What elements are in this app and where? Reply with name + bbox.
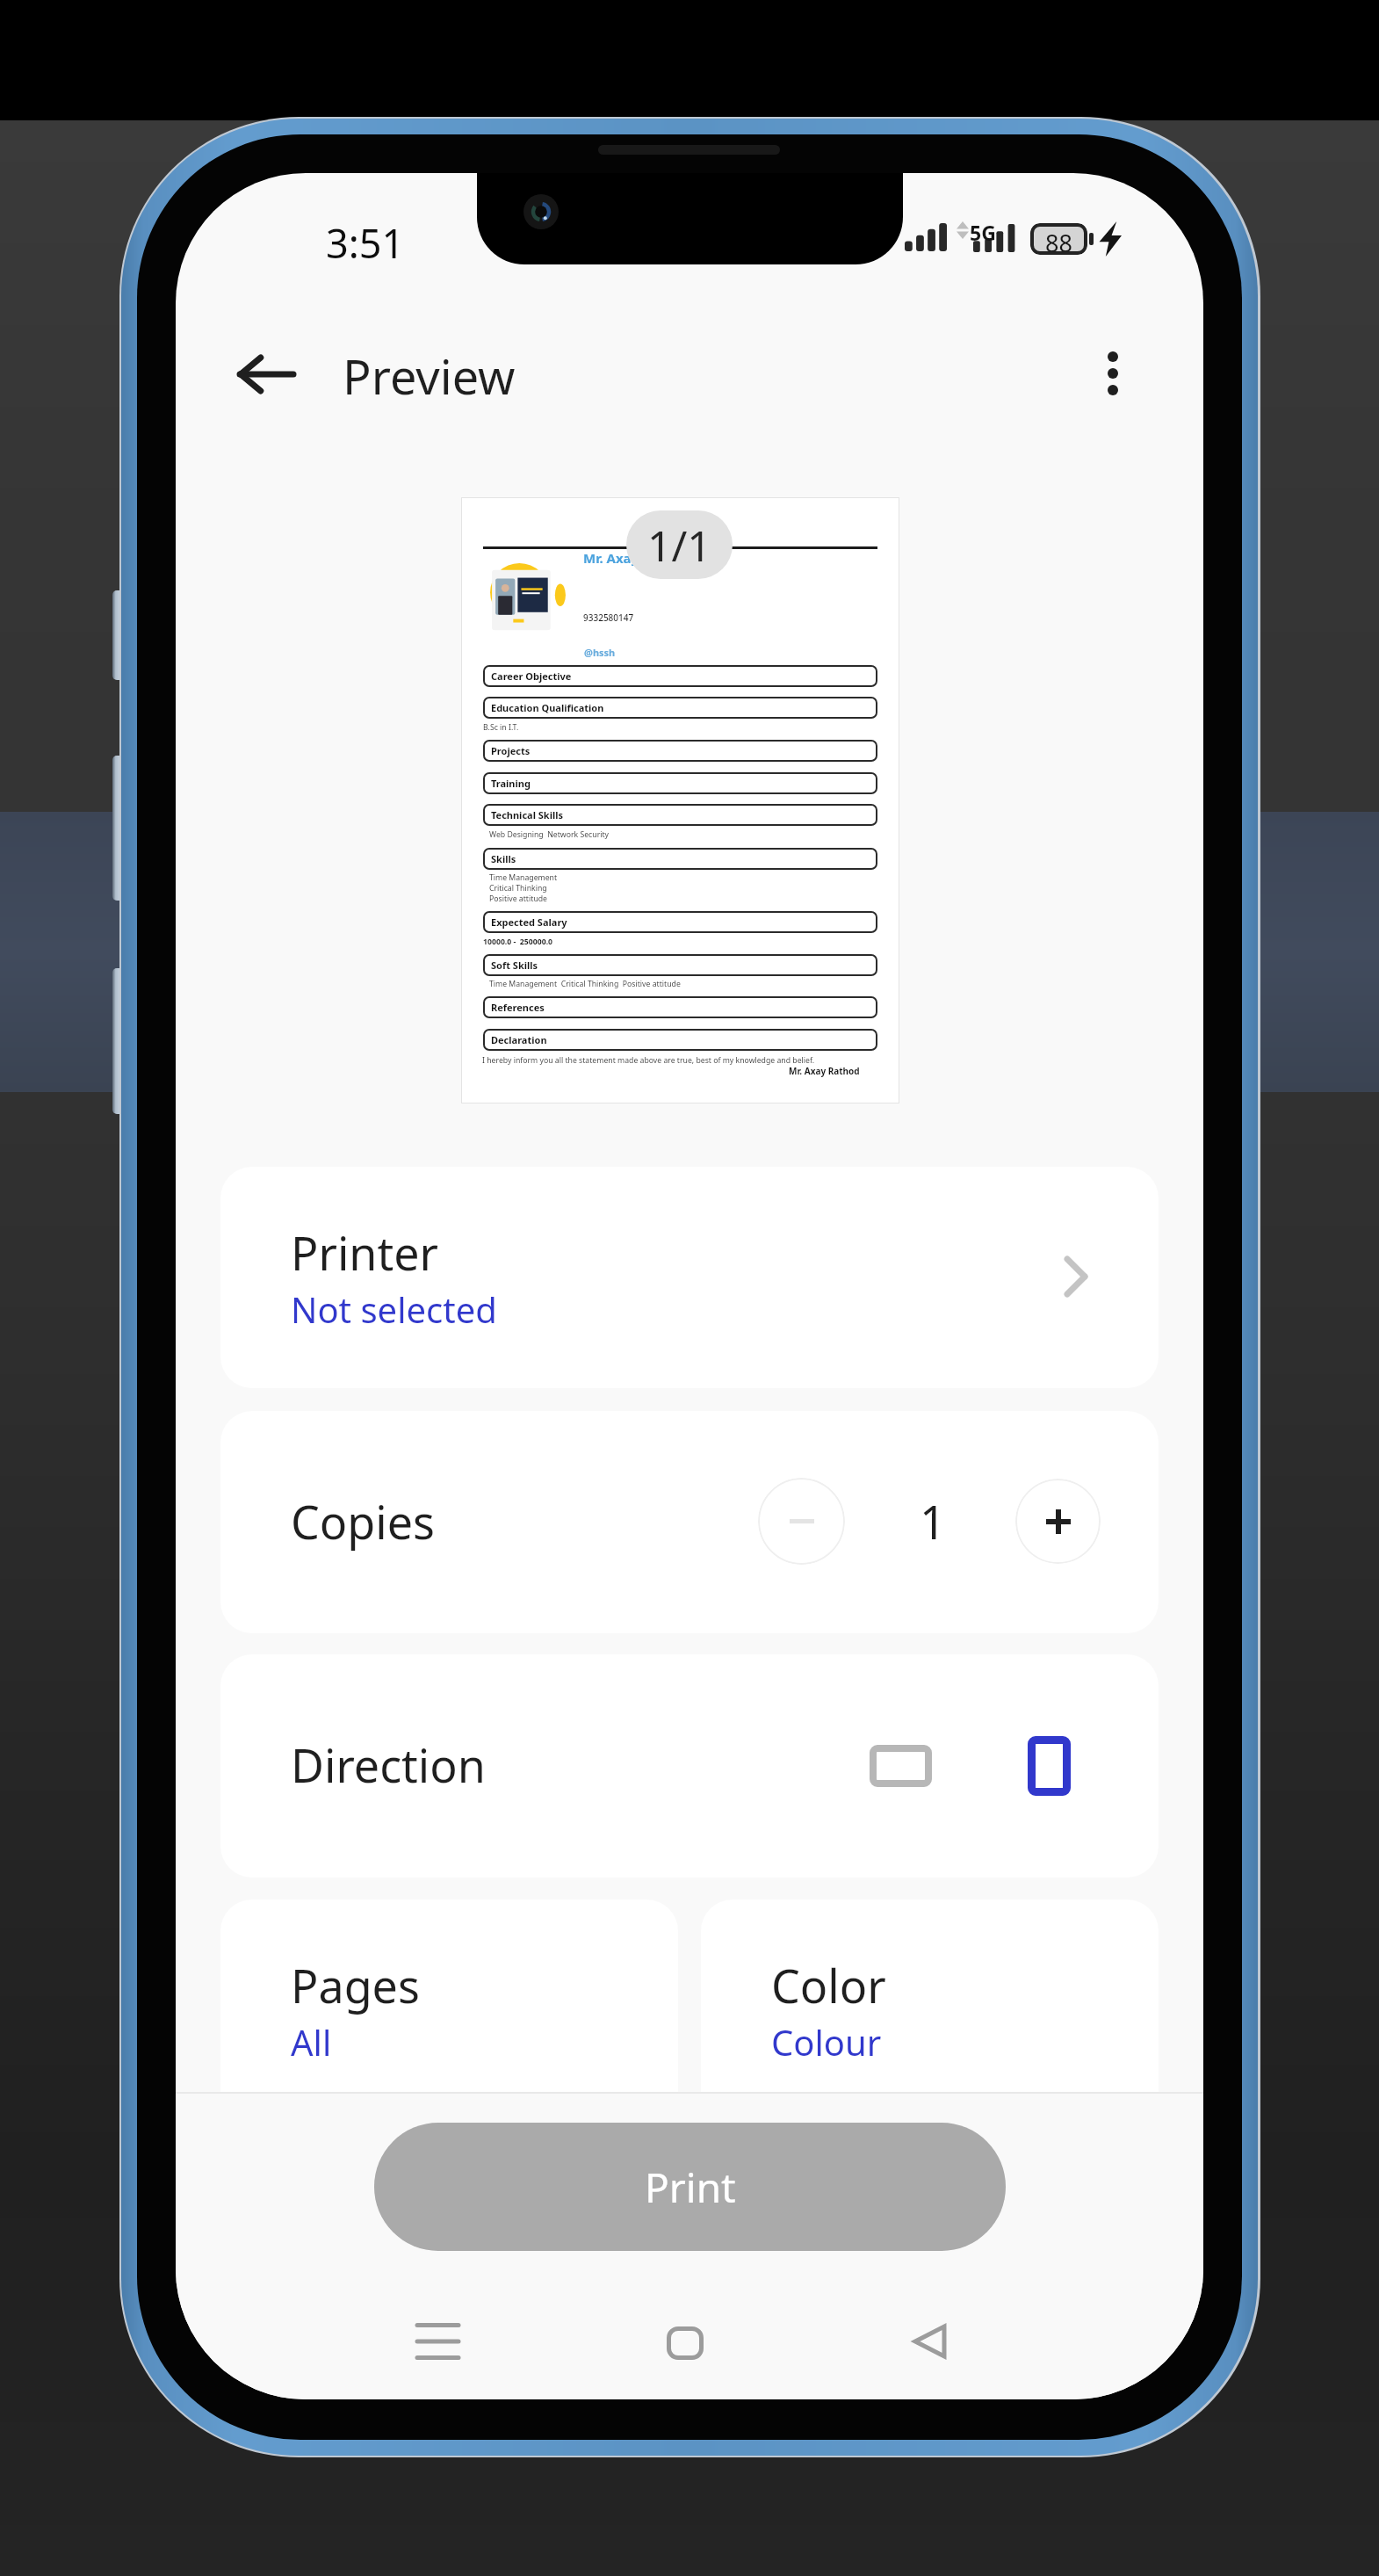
staticText: Career Objective [491, 669, 572, 683]
staticText: Colour [771, 2018, 882, 2066]
staticText: Soft Skills [491, 959, 538, 972]
staticText: 1/1 [647, 517, 711, 574]
button[interactable]: Print [374, 2123, 1006, 2251]
staticText: Projects [491, 744, 531, 757]
staticText: B.Sc in I.T. [483, 722, 519, 733]
staticText: Training [491, 777, 531, 790]
staticText: Expected Salary [491, 915, 567, 929]
staticText: 88 [1045, 227, 1072, 251]
staticText: 9332580147 [583, 611, 634, 624]
staticText: Copies [291, 1490, 435, 1552]
button[interactable]: Pages [220, 1899, 678, 2123]
staticText: Mr. Axay [583, 549, 639, 567]
button[interactable]: Landscape orientation [852, 1727, 949, 1805]
button[interactable]: More options [1067, 328, 1159, 419]
button[interactable]: Home [641, 2299, 729, 2387]
staticText: 10000.0 - 250000.0 [483, 937, 553, 947]
staticText: Time Management Critical Thinking Positi… [489, 979, 681, 989]
staticText: Skills [491, 852, 516, 865]
staticText: 3:51 [326, 216, 405, 270]
button[interactable]: Color [701, 1899, 1159, 2123]
staticText: Education Qualification [491, 701, 604, 714]
staticText: Print [645, 2160, 736, 2215]
staticText: References [491, 1001, 545, 1014]
button[interactable]: Increase copies [1015, 1479, 1101, 1564]
button[interactable]: Decrease copies [758, 1478, 845, 1565]
staticText: I hereby inform you all the statement ma… [482, 1055, 815, 1066]
staticText: Web Designing Network Security [489, 829, 610, 840]
staticText: 1 [920, 1490, 946, 1552]
staticText: Time Management [489, 872, 558, 883]
staticText: Mr. Axay Rathod [789, 1065, 860, 1077]
staticText: Technical Skills [491, 808, 564, 821]
staticText: Printer [291, 1221, 439, 1284]
button[interactable]: Recent apps [393, 2297, 481, 2385]
staticText: Color [771, 1954, 886, 2016]
staticText: 5G [970, 219, 996, 246]
staticText: All [291, 2018, 332, 2066]
staticText: Declaration [491, 1033, 547, 1046]
staticText: Positive attitude [489, 894, 547, 904]
staticText: @hssh [584, 646, 616, 659]
button[interactable]: Portrait orientation [1010, 1719, 1088, 1813]
button[interactable]: Back [218, 326, 314, 423]
button[interactable]: Printer [220, 1167, 1159, 1388]
staticText: Not selected [291, 1285, 497, 1333]
staticText: Pages [291, 1954, 420, 2016]
staticText: Preview [343, 344, 516, 409]
button[interactable]: Back [885, 2297, 973, 2385]
staticText: Direction [291, 1733, 486, 1796]
staticText: Critical Thinking [489, 883, 547, 894]
